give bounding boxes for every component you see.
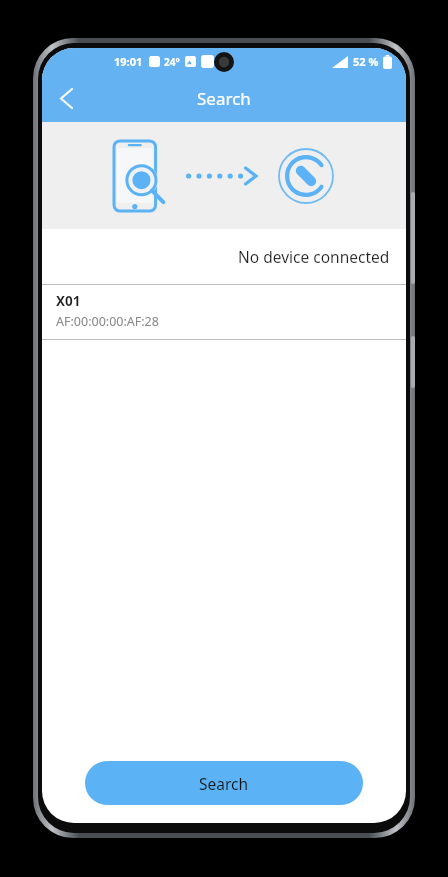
button[interactable]: Back (42, 74, 90, 122)
button[interactable]: X01 (42, 285, 406, 339)
staticText: No device connected (238, 246, 390, 267)
staticText: AF:00:00:00:AF:28 (56, 313, 159, 330)
button[interactable]: Search (85, 761, 363, 805)
staticText: X01 (56, 292, 81, 310)
staticText: 52 % (353, 54, 379, 69)
staticText: 24° (164, 55, 180, 69)
staticText: 19:01 (114, 54, 143, 69)
button[interactable]: No device connected (42, 229, 406, 284)
staticText: Search (197, 87, 251, 110)
staticText: Search (199, 773, 249, 794)
